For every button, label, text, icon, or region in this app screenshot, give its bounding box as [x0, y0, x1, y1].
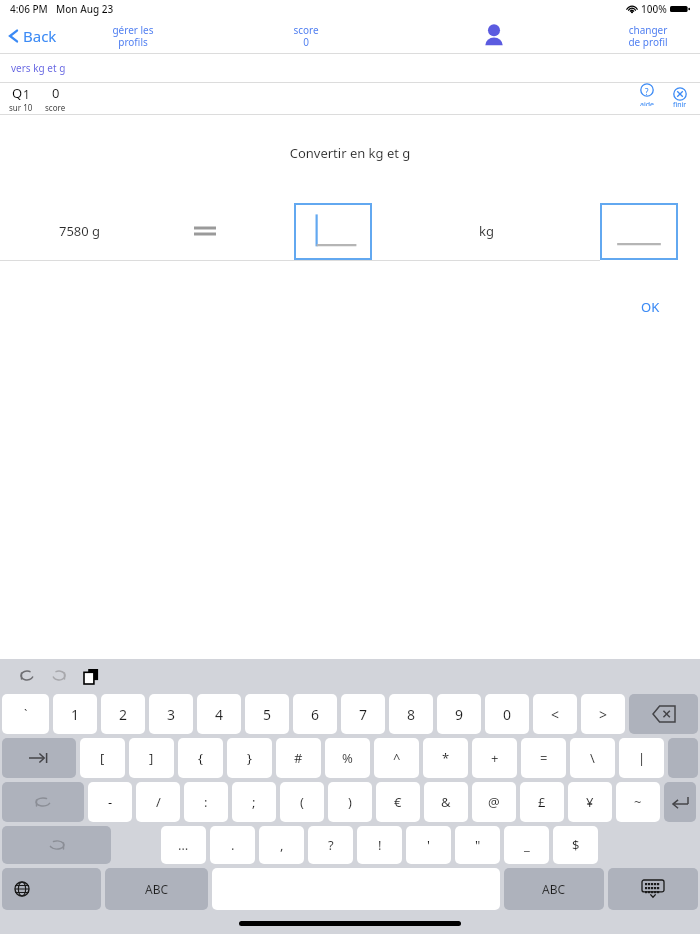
button[interactable]: / [136, 782, 180, 822]
button[interactable]: ` [2, 694, 49, 734]
staticText: 9 [455, 705, 464, 724]
button[interactable]: ' [406, 826, 451, 864]
button[interactable]: = [521, 738, 566, 778]
button[interactable]: score 0 [266, 18, 346, 53]
button[interactable]: $ [553, 826, 598, 864]
staticText: … [178, 836, 189, 854]
button[interactable]: Key [668, 738, 698, 778]
button[interactable]: ¥ [568, 782, 612, 822]
button[interactable]: OK [629, 294, 672, 320]
button[interactable] [294, 203, 372, 260]
staticText: ~ [634, 793, 642, 811]
staticText: sur 10 [9, 102, 33, 113]
button[interactable]: [ [80, 738, 125, 778]
button[interactable]: } [227, 738, 272, 778]
staticText: 1 [23, 86, 30, 102]
staticText: 0 [52, 84, 60, 102]
button[interactable]: finir [668, 87, 692, 111]
button[interactable]: Paste [78, 663, 104, 689]
button[interactable]: ^ [374, 738, 419, 778]
button[interactable]: ) [328, 782, 372, 822]
button[interactable]: 2 [101, 694, 145, 734]
button[interactable]: _ [504, 826, 549, 864]
button[interactable]: Redo [46, 663, 72, 689]
button[interactable]: , [259, 826, 304, 864]
staticText: 4 [215, 705, 224, 724]
button[interactable]: @ [472, 782, 516, 822]
button[interactable]: 4 [197, 694, 241, 734]
staticText: ? [328, 836, 334, 854]
button[interactable]: Undo [14, 663, 40, 689]
button[interactable]: ; [232, 782, 276, 822]
button[interactable]: 5 [245, 694, 289, 734]
staticText: finir [673, 100, 687, 110]
staticText: & [441, 793, 451, 811]
button[interactable]: ( [280, 782, 324, 822]
button[interactable]: 1 [53, 694, 97, 734]
staticText: | [638, 749, 646, 767]
button[interactable]: … [161, 826, 206, 864]
button[interactable]: % [325, 738, 370, 778]
staticText: 4:06 PM [10, 2, 48, 16]
button[interactable]: * [423, 738, 468, 778]
button[interactable]: Shift right [2, 826, 111, 864]
button[interactable]: gérer les profils [88, 18, 178, 53]
button[interactable]: Back [0, 18, 88, 53]
button[interactable]: 9 [437, 694, 481, 734]
button[interactable]: Tab [2, 738, 76, 778]
button[interactable]: £ [520, 782, 564, 822]
button[interactable]: & [424, 782, 468, 822]
button[interactable]: ? [308, 826, 353, 864]
button[interactable]: ] [129, 738, 174, 778]
button[interactable]: < [533, 694, 577, 734]
staticText: ¥ [586, 793, 594, 811]
staticText: - [108, 793, 113, 811]
button[interactable]: > [581, 694, 625, 734]
staticText: 3 [167, 705, 176, 724]
staticText: ABC [542, 881, 566, 897]
staticText: _ [524, 836, 530, 854]
button[interactable]: - [88, 782, 132, 822]
button[interactable]: " [455, 826, 500, 864]
staticText: score [45, 102, 66, 113]
button[interactable]: . [210, 826, 255, 864]
staticText: } [247, 749, 252, 767]
button[interactable]: ~ [616, 782, 660, 822]
button[interactable]: 8 [389, 694, 433, 734]
button[interactable]: ! [357, 826, 402, 864]
button[interactable]: : [184, 782, 228, 822]
button[interactable]: 0 [485, 694, 529, 734]
button[interactable]: € [376, 782, 420, 822]
button[interactable]: \ [570, 738, 615, 778]
staticText: / [156, 793, 161, 811]
button[interactable]: { [178, 738, 223, 778]
button[interactable] [600, 203, 678, 260]
staticText: Mon Aug 23 [56, 2, 114, 16]
button[interactable]: | [619, 738, 664, 778]
button[interactable]: Shift [2, 782, 84, 822]
button[interactable]: Language [2, 868, 101, 910]
button[interactable]: ABC [504, 868, 604, 910]
button[interactable]: Return [664, 782, 696, 822]
button[interactable]: aide [635, 83, 659, 114]
staticText: vers kg et g [11, 61, 66, 75]
staticText: [ [100, 749, 105, 767]
button[interactable]: 6 [293, 694, 337, 734]
button[interactable]: 7 [341, 694, 385, 734]
button[interactable]: Backspace [629, 694, 698, 734]
staticText: # [294, 749, 303, 767]
staticText: gérer les profils [112, 23, 154, 49]
button[interactable]: Hide keyboard [608, 868, 698, 910]
staticText: 2 [119, 705, 128, 724]
button[interactable]: 3 [149, 694, 193, 734]
button[interactable]: changer de profil [600, 18, 696, 53]
staticText: Q [12, 84, 23, 102]
staticText: ; [252, 793, 256, 811]
button[interactable]: ABC [105, 868, 208, 910]
staticText: 5 [263, 705, 272, 724]
staticText: ( [300, 793, 304, 811]
button[interactable]: # [276, 738, 321, 778]
button[interactable]: + [472, 738, 517, 778]
button[interactable]: Profil [466, 18, 522, 53]
